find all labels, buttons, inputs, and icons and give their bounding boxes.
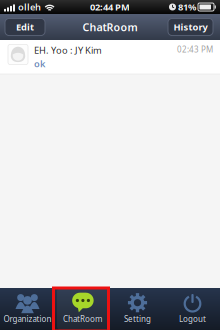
staticText: EH. Yoo : JY Kim bbox=[34, 44, 102, 56]
button[interactable]: Organization bbox=[0, 287, 55, 330]
staticText: ChatRoom bbox=[63, 314, 102, 324]
staticText: olleh bbox=[18, 1, 41, 13]
button[interactable]: Logout bbox=[165, 287, 220, 330]
button[interactable]: Setting bbox=[110, 287, 165, 330]
button[interactable]: EH. Yoo : JY Kim bbox=[0, 40, 220, 74]
staticText: ok bbox=[34, 57, 45, 70]
staticText: 81% bbox=[178, 1, 196, 13]
button[interactable]: History bbox=[168, 18, 213, 35]
staticText: 02:43 PM bbox=[177, 44, 213, 55]
staticText: ChatRoom bbox=[82, 20, 137, 34]
staticText: Setting bbox=[124, 314, 151, 324]
staticText: Edit bbox=[16, 21, 34, 33]
staticText: Organization bbox=[3, 314, 51, 324]
staticText: Logout bbox=[179, 314, 206, 324]
staticText: 02:44 PM bbox=[90, 1, 130, 13]
button[interactable]: ChatRoom bbox=[55, 287, 110, 330]
button[interactable]: Edit bbox=[5, 18, 45, 35]
staticText: History bbox=[173, 21, 207, 33]
